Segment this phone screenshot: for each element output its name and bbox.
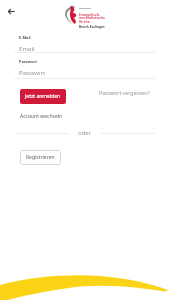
button[interactable]: Passwort vergessen? xyxy=(99,89,150,96)
staticText: Bezirk Esslingen xyxy=(79,25,105,29)
staticText: Account wechseln xyxy=(20,113,63,120)
button[interactable]: Account wechseln xyxy=(20,113,63,120)
staticText: E-Mail xyxy=(19,35,31,40)
button[interactable]: Back xyxy=(5,5,18,18)
button[interactable]: Registrieren xyxy=(20,150,61,165)
staticText: Registrieren xyxy=(26,154,55,161)
staticText: Evangelisch- methodistische Kirche xyxy=(79,12,106,24)
staticText: Jetzt anmelden xyxy=(25,93,61,100)
staticText: Passwort xyxy=(19,68,46,76)
staticText: Passwort vergessen? xyxy=(99,89,150,96)
staticText: oder xyxy=(78,129,92,137)
button[interactable]: Jetzt anmelden xyxy=(20,89,66,104)
staticText: Passwort xyxy=(19,59,37,64)
staticText: Email xyxy=(19,44,35,52)
